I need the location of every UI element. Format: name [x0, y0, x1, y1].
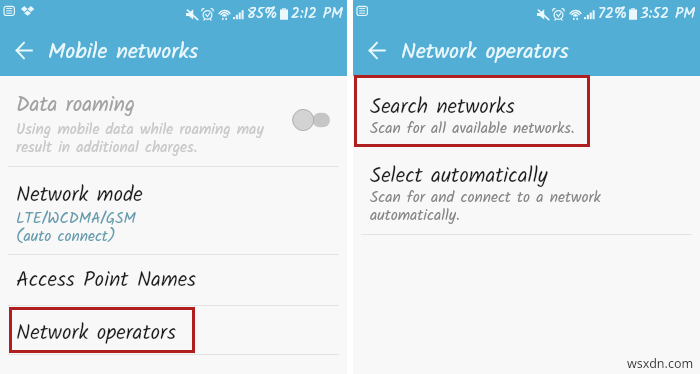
staticText: 85%	[247, 2, 278, 26]
button[interactable]: Navigate up	[8, 35, 40, 67]
staticText: Mobile networks	[48, 35, 199, 70]
button[interactable]: Access Point Names	[0, 255, 347, 305]
staticText: Select automatically	[370, 160, 548, 193]
button[interactable]: Select automatically	[353, 146, 700, 234]
staticText: Data roaming	[16, 89, 135, 122]
staticText: Scan for all available networks.	[370, 117, 575, 142]
staticText: LTE/WCDMA/GSM (auto connect)	[16, 207, 136, 249]
button[interactable]: Network mode	[0, 167, 347, 254]
staticText: 2:12 PM	[291, 2, 343, 26]
staticText: Search networks	[370, 91, 515, 124]
staticText: Network mode	[16, 179, 143, 212]
staticText: Using mobile data while roaming may resu…	[16, 118, 264, 160]
staticText: 3:52 PM	[640, 2, 696, 26]
button[interactable]: Navigate up	[361, 35, 393, 67]
staticText: 72%	[598, 2, 627, 26]
staticText: Access Point Names	[16, 264, 197, 297]
staticText: Network operators	[401, 35, 569, 70]
staticText: Network operators	[16, 317, 176, 350]
button[interactable]: Data roaming	[0, 77, 347, 165]
staticText: wsxdn.com	[627, 355, 694, 372]
button[interactable]: Search networks	[353, 77, 700, 146]
button[interactable]: Network operators	[0, 306, 347, 354]
staticText: Scan for and connect to a network automa…	[370, 186, 601, 228]
